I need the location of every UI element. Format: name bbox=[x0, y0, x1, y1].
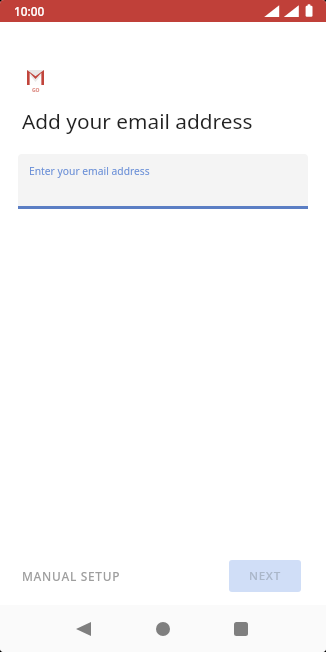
staticText: 10:00 bbox=[14, 3, 45, 19]
button[interactable]: NEXT bbox=[229, 560, 301, 592]
button[interactable]: MANUAL SETUP bbox=[14, 560, 129, 592]
staticText: GO bbox=[32, 87, 40, 94]
button[interactable]: Enter your email address bbox=[18, 154, 308, 209]
button[interactable]: Back bbox=[57, 605, 109, 652]
staticText: NEXT bbox=[249, 568, 281, 584]
staticText: Enter your email address bbox=[29, 164, 150, 178]
staticText: MANUAL SETUP bbox=[22, 568, 121, 584]
button[interactable]: Recent apps bbox=[215, 605, 267, 652]
staticText: Add your email address bbox=[22, 107, 253, 135]
button[interactable]: Home bbox=[137, 605, 189, 652]
